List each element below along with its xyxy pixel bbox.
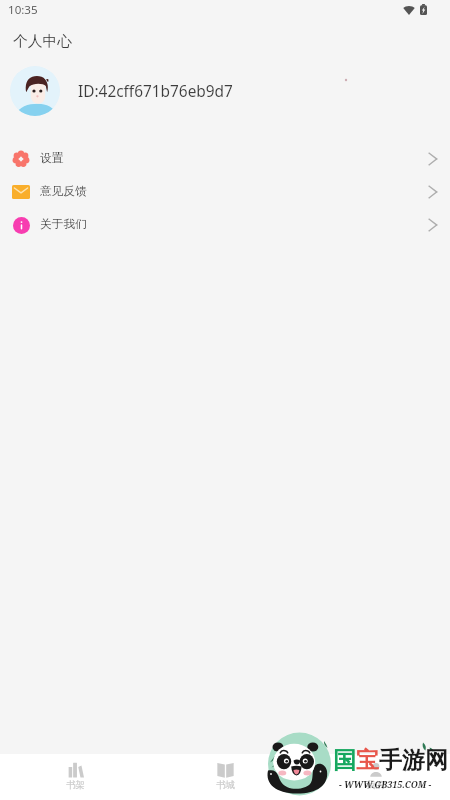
staticText: 个人中心 [13,32,73,51]
staticText: 书架 [66,779,85,791]
button[interactable]: 书城 [150,754,300,800]
button[interactable]: 意见反馈 [0,175,450,208]
staticText: 国 [333,746,356,775]
staticText: - WWW.GB315.COM - [339,778,432,790]
staticText: 宝 [356,746,379,775]
staticText: 设置 [40,151,64,166]
button[interactable]: 我的 [300,754,450,800]
button[interactable]: 书架 [0,754,150,800]
staticText: 手游网 [379,746,448,775]
staticText: 书城 [216,779,235,791]
staticText: 关于我们 [40,217,87,232]
staticText: ID:42cff671b76eb9d7 [78,81,233,102]
button[interactable]: 设置 [0,142,450,175]
staticText: 10:35 [8,2,38,18]
staticText: 意见反馈 [40,184,87,199]
button[interactable]: 关于我们 [0,208,450,241]
button[interactable]: ID:42cff671b76eb9d7 [0,64,450,118]
staticText: 我的 [366,779,385,791]
